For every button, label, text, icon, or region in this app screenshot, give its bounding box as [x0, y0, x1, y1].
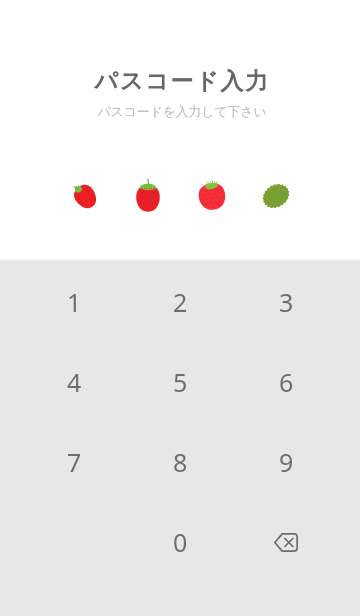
staticText: 3: [279, 285, 294, 319]
staticText: パスコードを入力して下さい: [97, 104, 267, 120]
staticText: 7: [67, 445, 82, 479]
button[interactable]: 2: [127, 262, 233, 342]
staticText: 1: [67, 285, 82, 319]
button[interactable]: 7: [21, 422, 127, 502]
staticText: 4: [67, 365, 82, 399]
staticText: パスコード入力: [94, 67, 270, 96]
button[interactable]: 5: [127, 342, 233, 422]
button[interactable]: 0: [127, 502, 233, 582]
button[interactable]: 1: [21, 262, 127, 342]
button[interactable]: 3: [233, 262, 339, 342]
staticText: 6: [279, 365, 294, 399]
button[interactable]: 9: [233, 422, 339, 502]
button[interactable]: Delete: [233, 502, 339, 582]
button[interactable]: 6: [233, 342, 339, 422]
staticText: 8: [173, 445, 188, 479]
staticText: 5: [173, 365, 188, 399]
staticText: 9: [279, 445, 294, 479]
staticText: 0: [173, 525, 188, 559]
button[interactable]: 4: [21, 342, 127, 422]
button[interactable]: 8: [127, 422, 233, 502]
staticText: 2: [173, 285, 188, 319]
